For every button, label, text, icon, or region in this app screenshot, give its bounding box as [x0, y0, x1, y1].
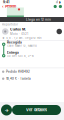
staticText: Ver detalles	[26, 108, 47, 112]
staticText: Pedido #A8492	[6, 70, 30, 73]
button[interactable]: 18,40 € · Tarjeta	[0, 75, 64, 82]
staticText: ★ 4,9 · 1,2 km · llega 12 min	[2, 36, 42, 40]
staticText: Recogida	[7, 41, 22, 44]
staticText: Entrega	[7, 51, 19, 54]
button[interactable]: Carlos M.	[0, 27, 64, 36]
staticText: Carlos M.	[10, 27, 26, 31]
button[interactable]: Pedido #A8492	[0, 68, 64, 75]
button[interactable]: Seguir pedido	[1, 104, 12, 115]
button[interactable]: Ayuda	[54, 5, 57, 8]
staticText: 18,40 € · Tarjeta	[6, 77, 31, 80]
staticText: Llega en 12 min	[26, 18, 51, 21]
staticText: Moto · 4521	[10, 32, 28, 36]
staticText: Calle Mayor 12, Madrid	[7, 44, 37, 47]
staticText: Av. del Sol 8, 2º B	[7, 54, 34, 58]
button[interactable]: Compartir	[59, 5, 62, 8]
button[interactable]: Ver detalles	[12, 105, 61, 115]
staticText: →	[4, 107, 8, 113]
staticText: 9:41	[3, 0, 9, 4]
staticText: ‹ Pedido	[2, 4, 16, 9]
staticText: ıl ◗	[56, 0, 61, 4]
staticText: Repartidor	[2, 23, 18, 26]
button[interactable]: ‹ Pedido	[2, 4, 16, 9]
